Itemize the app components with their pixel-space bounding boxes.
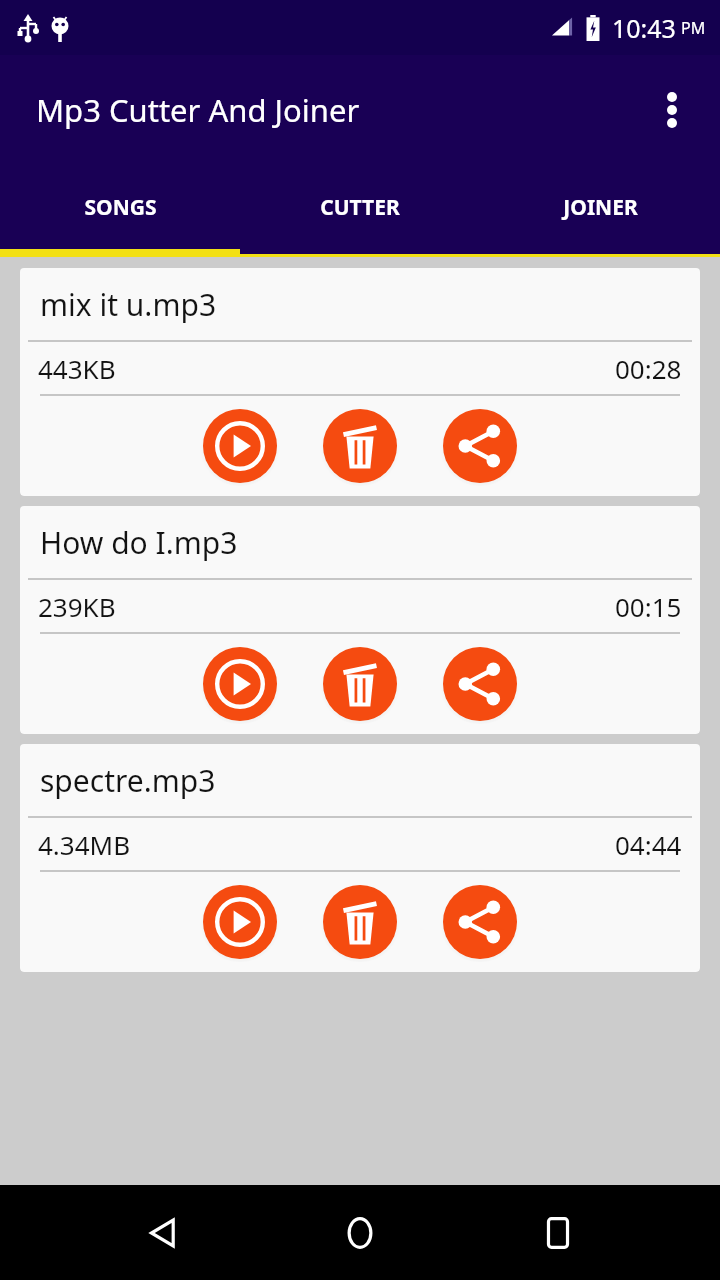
button[interactable]: JOINER (480, 165, 720, 249)
button[interactable]: Back (128, 1198, 198, 1268)
button[interactable]: Delete (320, 644, 400, 724)
staticText: JOINER (563, 193, 638, 222)
staticText: 04:44 (615, 827, 682, 862)
staticText: 00:28 (615, 351, 682, 386)
staticText: SONGS (84, 193, 157, 222)
button[interactable]: spectre.mp3 (20, 744, 700, 972)
button[interactable]: SONGS (0, 165, 240, 249)
button[interactable]: How do I.mp3 (20, 506, 700, 734)
button[interactable]: Play (200, 406, 280, 486)
staticText: PM (681, 17, 706, 39)
staticText: 4.34MB (38, 827, 131, 862)
button[interactable]: Delete (320, 406, 400, 486)
button[interactable]: Recent apps (523, 1198, 593, 1268)
staticText: spectre.mp3 (40, 760, 216, 801)
button[interactable]: CUTTER (240, 165, 480, 249)
staticText: How do I.mp3 (40, 522, 238, 563)
button[interactable]: More options (644, 82, 700, 138)
button[interactable]: Home (325, 1198, 395, 1268)
button[interactable]: Share (440, 882, 520, 962)
button[interactable]: Share (440, 406, 520, 486)
staticText: Mp3 Cutter And Joiner (36, 89, 360, 131)
staticText: mix it u.mp3 (40, 284, 217, 325)
staticText: CUTTER (320, 193, 400, 222)
staticText: 10:43 (612, 11, 676, 45)
staticText: 239KB (38, 589, 116, 624)
staticText: 443KB (38, 351, 116, 386)
button[interactable]: mix it u.mp3 (20, 268, 700, 496)
button[interactable]: Share (440, 644, 520, 724)
button[interactable]: Play (200, 644, 280, 724)
staticText: 00:15 (615, 589, 682, 624)
button[interactable]: Delete (320, 882, 400, 962)
button[interactable]: Play (200, 882, 280, 962)
